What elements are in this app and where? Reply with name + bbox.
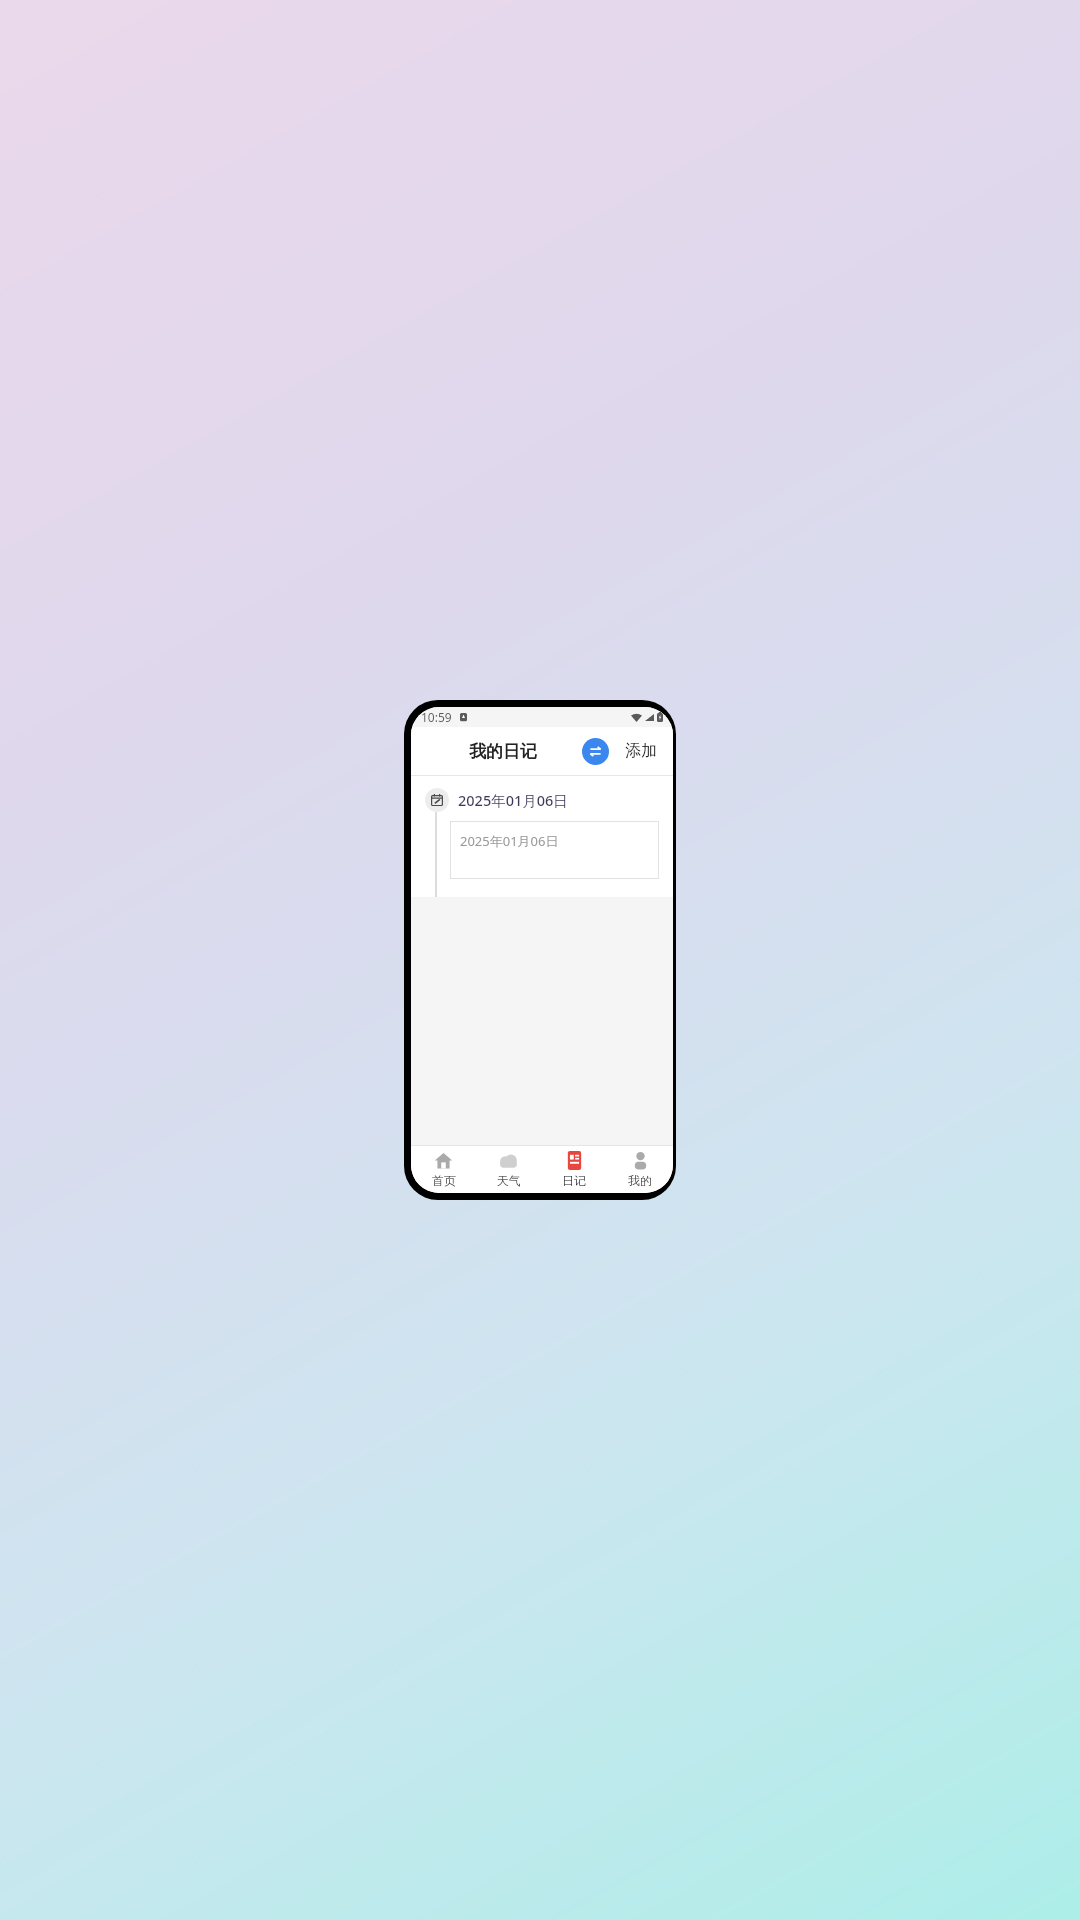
button[interactable]: 天气 [476, 1146, 541, 1193]
button[interactable]: 切换 [582, 738, 609, 765]
staticText: 添加 [625, 741, 657, 761]
staticText: 天气 [497, 1173, 521, 1188]
staticText: 日记 [562, 1173, 586, 1188]
staticText: 我的日记 [469, 741, 537, 762]
button[interactable]: 首页 [411, 1146, 476, 1193]
staticText: 2025年01月06日 [458, 790, 568, 810]
staticText: 首页 [432, 1173, 456, 1188]
button[interactable]: 我的 [607, 1146, 673, 1193]
staticText: 我的 [628, 1173, 652, 1188]
button[interactable]: 日记 [541, 1146, 607, 1193]
staticText: 10:59 [421, 709, 452, 725]
button[interactable]: 添加 [623, 737, 659, 765]
staticText: 2025年01月06日 [460, 832, 559, 850]
button[interactable]: 2025年01月06日 [450, 821, 659, 879]
button[interactable]: 2025年01月06日 [411, 788, 673, 812]
